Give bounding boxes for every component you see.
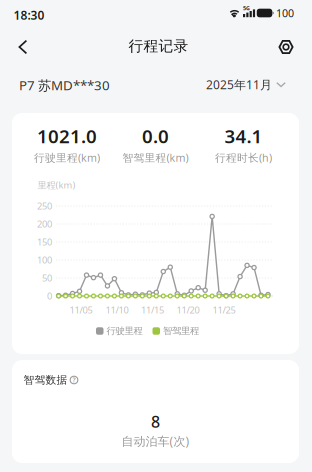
button[interactable]: Settings bbox=[271, 32, 301, 62]
staticText: 11/25 bbox=[212, 304, 235, 316]
staticText: 行程记录 bbox=[128, 37, 188, 55]
staticText: 250 bbox=[37, 200, 52, 212]
staticText: 11/10 bbox=[105, 304, 128, 316]
staticText: 智驾数据 bbox=[23, 373, 67, 386]
staticText: 8 bbox=[151, 411, 160, 432]
staticText: 100 bbox=[37, 254, 52, 266]
staticText: ? bbox=[72, 376, 75, 384]
staticText: 智驾里程(km) bbox=[122, 150, 188, 165]
staticText: 50 bbox=[42, 272, 52, 284]
staticText: 自动泊车(次) bbox=[121, 433, 189, 449]
staticText: 34.1 bbox=[224, 124, 262, 148]
staticText: 11/05 bbox=[69, 304, 92, 316]
button[interactable]: Back bbox=[8, 32, 38, 62]
staticText: 0.0 bbox=[142, 124, 169, 148]
staticText: 行程时长(h) bbox=[215, 150, 272, 165]
staticText: 行驶里程(km) bbox=[34, 150, 100, 165]
staticText: 1021.0 bbox=[37, 124, 97, 148]
staticText: 11/20 bbox=[176, 304, 199, 316]
staticText: 11/15 bbox=[141, 304, 164, 316]
staticText: 100 bbox=[276, 6, 294, 20]
staticText: 行驶里程 bbox=[106, 325, 142, 337]
staticText: 150 bbox=[37, 236, 52, 248]
staticText: P7 苏MD***30 bbox=[19, 76, 110, 94]
button[interactable]: 智驾数据说明 bbox=[23, 373, 78, 386]
staticText: 18:30 bbox=[13, 7, 44, 23]
staticText: 5G bbox=[243, 5, 250, 12]
staticText: 2025年11月 bbox=[206, 76, 272, 92]
button[interactable]: 2025年11月 bbox=[206, 76, 286, 92]
staticText: 200 bbox=[37, 218, 52, 230]
staticText: 0 bbox=[47, 290, 52, 302]
staticText: 里程(km) bbox=[37, 179, 75, 191]
staticText: 智驾里程 bbox=[163, 325, 199, 337]
button[interactable]: P7 苏MD***30 bbox=[19, 76, 110, 94]
